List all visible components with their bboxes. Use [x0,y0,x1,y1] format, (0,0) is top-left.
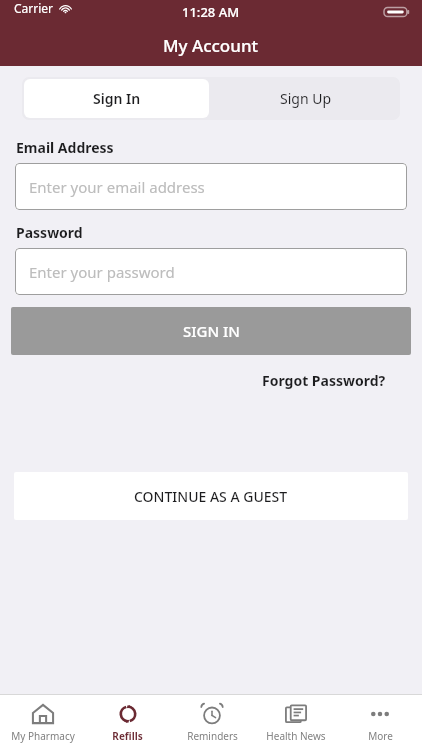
button[interactable]: More [338,695,422,750]
staticText: More [368,729,393,743]
button[interactable]: Sign Up [211,77,400,120]
staticText: Password [16,223,83,242]
staticText: Carrier [14,0,54,16]
staticText: Forgot Password? [262,371,386,390]
staticText: Refills [112,729,143,743]
button[interactable]: Reminders [170,695,254,750]
staticText: Email Address [16,138,114,157]
staticText: SIGN IN [183,321,240,341]
button[interactable]: Health News [254,695,338,750]
staticText: Enter your password [29,262,175,282]
staticText: My Pharmacy [11,729,75,743]
button[interactable]: SIGN IN [11,307,411,355]
button[interactable]: Forgot Password? [258,367,390,394]
staticText: Sign Up [280,89,332,108]
button[interactable]: Sign In [24,79,209,118]
staticText: Enter your email address [29,177,205,197]
button[interactable]: CONTINUE AS A GUEST [14,472,408,520]
staticText: CONTINUE AS A GUEST [134,487,288,506]
staticText: 11:28 AM [182,3,240,21]
staticText: Sign In [93,89,141,108]
button[interactable]: My Pharmacy [0,695,85,750]
button[interactable]: Refills [85,695,170,750]
button[interactable]: Enter your email address [15,163,407,210]
button[interactable]: Enter your password [15,248,407,295]
staticText: My Account [163,34,259,57]
staticText: Health News [266,729,326,743]
staticText: Reminders [187,729,238,743]
